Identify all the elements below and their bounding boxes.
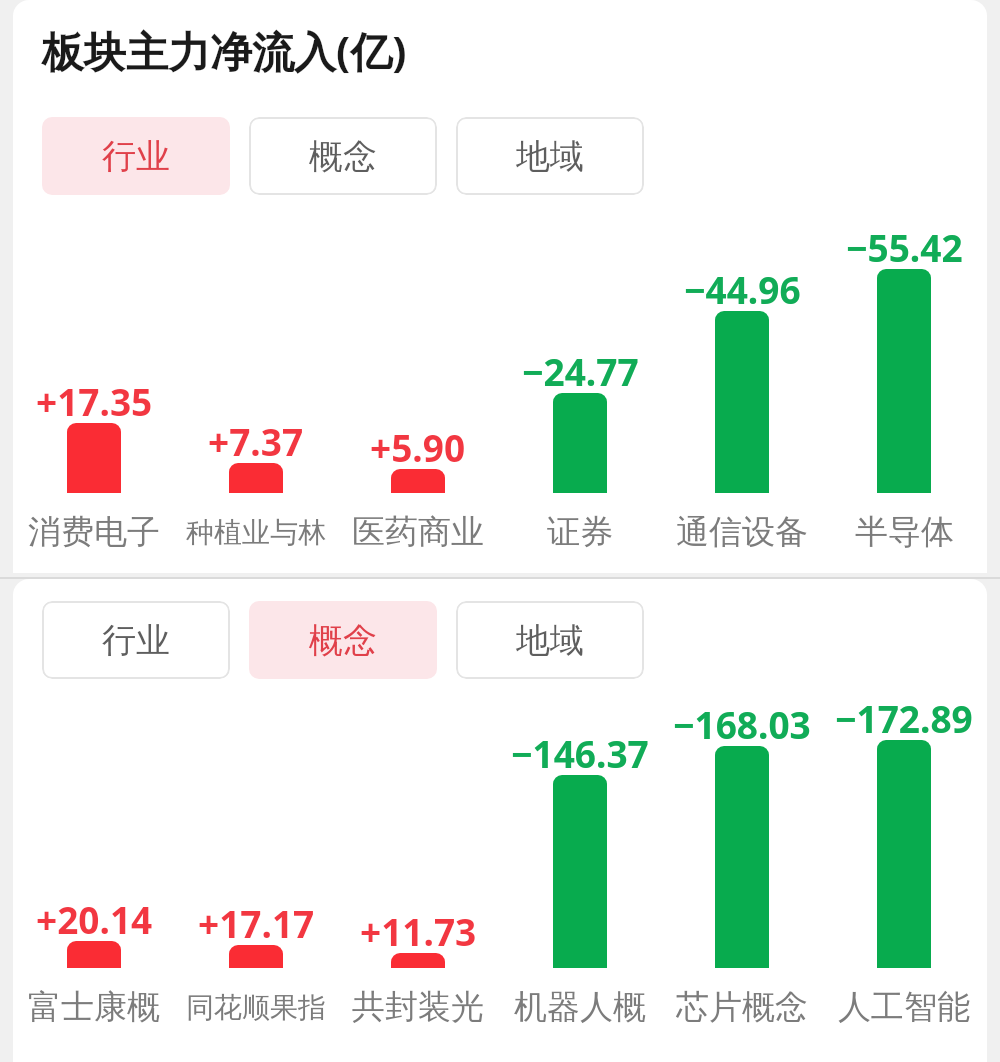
staticText: 行业 [102,135,170,178]
staticText: 地域 [516,135,584,178]
button[interactable]: −55.42 [823,0,985,573]
button[interactable]: 概念 [249,601,437,679]
button[interactable]: +5.90 [337,0,499,573]
staticText: −44.96 [684,264,801,311]
staticText: +17.35 [36,376,153,423]
staticText: 富士康概念 [13,986,175,1028]
staticText: 种植业与林业 [175,515,337,550]
staticText: −146.37 [511,728,649,775]
staticText: 证券 [547,511,613,553]
staticText: 共封装光学( [337,986,499,1028]
button[interactable]: +20.14 [13,579,175,1062]
staticText: −24.77 [522,346,639,393]
staticText: 人工智能 [838,986,970,1028]
staticText: −55.42 [846,222,963,269]
button[interactable]: 地域 [456,601,644,679]
staticText: 概念 [309,135,377,178]
staticText: +17.17 [198,898,315,945]
button[interactable]: 概念 [249,117,437,195]
staticText: 地域 [516,619,584,662]
staticText: +7.37 [208,416,304,463]
staticText: 概念 [309,619,377,662]
button[interactable]: −44.96 [661,0,823,573]
button[interactable]: 行业 [42,117,230,195]
staticText: 医药商业 [352,511,484,553]
button[interactable]: 地域 [456,117,644,195]
staticText: 行业 [102,619,170,662]
staticText: +5.90 [370,422,466,469]
button[interactable]: −146.37 [499,579,661,1062]
staticText: 板块主力净流入(亿) [42,22,407,79]
button[interactable]: +7.37 [175,0,337,573]
button[interactable]: +11.73 [337,579,499,1062]
staticText: +20.14 [36,894,153,941]
staticText: +11.73 [360,906,477,953]
staticText: 半导体 [855,511,954,553]
staticText: −172.89 [835,693,973,740]
button[interactable]: +17.35 [13,0,175,573]
button[interactable]: −24.77 [499,0,661,573]
button[interactable]: −168.03 [661,579,823,1062]
button[interactable]: 行业 [42,601,230,679]
staticText: −168.03 [673,699,811,746]
staticText: 机器人概念 [499,986,661,1028]
staticText: 同花顺果指数 [175,990,337,1025]
button[interactable]: +17.17 [175,579,337,1062]
staticText: 通信设备 [676,511,808,553]
button[interactable]: −172.89 [823,579,985,1062]
staticText: 消费电子 [28,511,160,553]
staticText: 芯片概念 [676,986,808,1028]
